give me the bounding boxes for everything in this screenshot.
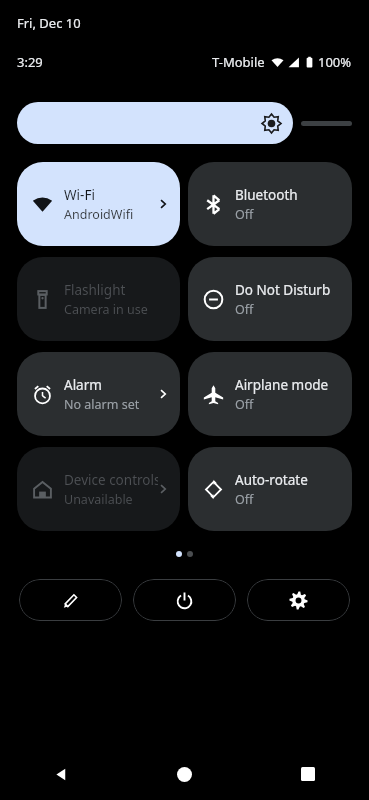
button[interactable]: Brightness	[17, 102, 293, 144]
staticText: Flashlight	[64, 281, 126, 299]
staticText: Off	[235, 491, 254, 508]
staticText: Bluetooth	[235, 186, 298, 204]
button[interactable]: Alarm	[17, 352, 180, 436]
button[interactable]: Recents	[246, 748, 369, 800]
staticText: AndroidWifi	[64, 206, 134, 223]
staticText: Unavailable	[64, 491, 133, 508]
staticText: T-Mobile	[212, 53, 265, 71]
staticText: 3:29	[17, 53, 43, 71]
button[interactable]: Home	[123, 748, 246, 800]
button[interactable]: Power	[133, 579, 236, 621]
staticText: Off	[235, 396, 254, 413]
staticText: No alarm set	[64, 396, 140, 413]
staticText: Alarm	[64, 376, 102, 394]
button[interactable]: Do Not Disturb	[188, 257, 352, 341]
staticText: Do Not Disturb	[235, 281, 331, 299]
button[interactable]: Bluetooth	[188, 162, 352, 246]
staticText: Auto-rotate	[235, 471, 308, 489]
button[interactable]: Wi-Fi	[17, 162, 180, 246]
staticText: Off	[235, 206, 254, 223]
staticText: Airplane mode	[235, 376, 329, 394]
button[interactable]: Back	[0, 748, 123, 800]
staticText: Camera in use	[64, 301, 148, 318]
button[interactable]: Edit	[19, 579, 122, 621]
staticText: Device controls	[64, 471, 158, 489]
button[interactable]: Auto-rotate	[188, 447, 352, 531]
button[interactable]: Flashlight	[17, 257, 180, 341]
staticText: 100%	[318, 53, 352, 71]
button[interactable]: Device controls	[17, 447, 180, 531]
button[interactable]: Settings	[247, 579, 350, 621]
staticText: Fri, Dec 10	[17, 14, 81, 32]
staticText: Wi-Fi	[64, 186, 95, 204]
button[interactable]: Airplane mode	[188, 352, 352, 436]
staticText: Off	[235, 301, 254, 318]
